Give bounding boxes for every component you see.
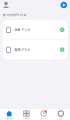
button[interactable]: Account [2, 0, 10, 9]
button[interactable]: 設定 [53, 108, 69, 120]
button[interactable]: 部屋 [18, 108, 34, 120]
staticText: すべてのデバイス [2, 13, 26, 17]
staticText: 設定 [59, 117, 63, 120]
staticText: 部屋 [24, 117, 28, 120]
button[interactable]: 客間 デスク [2, 40, 67, 59]
staticText: オート [41, 117, 47, 120]
button[interactable]: オート [36, 108, 52, 120]
staticText: ホーム [6, 117, 12, 120]
staticText: 浴室 デッキ [14, 28, 30, 32]
button[interactable]: ホーム [1, 108, 17, 120]
staticText: 客間 デスク [14, 48, 30, 52]
button[interactable]: Add accessory [60, 1, 68, 9]
button[interactable]: 浴室 デッキ [2, 20, 67, 39]
